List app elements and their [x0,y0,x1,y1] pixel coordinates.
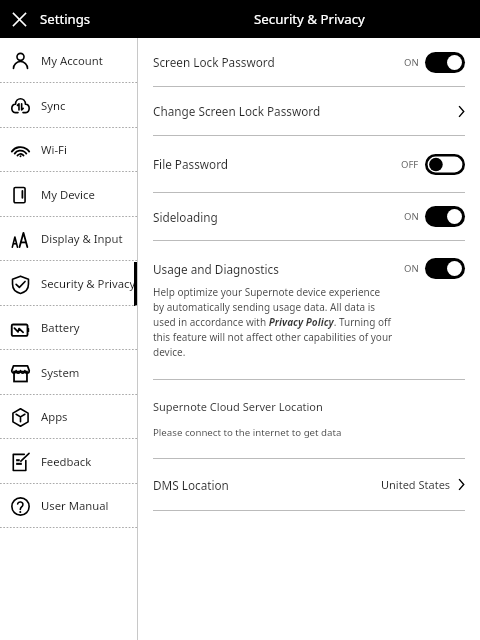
staticText: Usage and Diagnostics [153,261,404,277]
staticText: Feedback [41,454,92,469]
staticText: Sync [41,98,66,113]
staticText: ON [404,56,419,69]
button[interactable]: Screen Lock Password [153,38,465,86]
button[interactable]: Sync [0,84,137,128]
button[interactable]: Close [0,5,103,33]
staticText: Help optimize your Supernote device expe… [153,285,393,359]
staticText: Display & Input [41,231,123,246]
button[interactable]: Change Screen Lock Password [153,87,465,135]
staticText: Supernote Cloud Server Location [153,399,323,414]
staticText: My Device [41,187,95,202]
staticText: DMS Location [153,477,381,493]
staticText: ON [404,262,419,275]
staticText: Security & Privacy [254,10,365,28]
button[interactable]: System [0,351,137,395]
button[interactable]: Feedback [0,440,137,484]
button[interactable]: Sideloading [153,193,465,240]
button[interactable]: DMS Location [153,459,465,510]
staticText: Settings [40,10,91,28]
button[interactable]: Toggle on [425,52,465,73]
button[interactable]: Battery [0,306,137,350]
button[interactable]: Usage and Diagnostics [153,252,465,285]
button[interactable]: Security & Privacy [0,262,137,306]
staticText: Sideloading [153,209,404,225]
staticText: Security & Privacy [41,276,136,291]
staticText: User Manual [41,498,109,513]
button[interactable]: Display & Input [0,217,137,261]
button[interactable]: Apps [0,395,137,439]
staticText: System [41,365,80,380]
button[interactable]: Toggle off [425,154,465,175]
staticText: Battery [41,320,80,335]
other: Close [12,12,27,27]
button[interactable]: My Account [0,39,137,83]
button[interactable]: User Manual [0,484,137,528]
staticText: My Account [41,53,103,68]
staticText: Change Screen Lock Password [153,103,458,119]
button[interactable]: My Device [0,173,137,217]
button[interactable]: Toggle on [425,206,465,227]
staticText: Please connect to the internet to get da… [153,426,342,439]
staticText: Screen Lock Password [153,54,404,70]
staticText: United States [381,477,451,492]
button[interactable]: File Password [153,136,465,192]
staticText: File Password [153,156,401,172]
staticText: Wi-Fi [41,142,67,157]
staticText: ON [404,210,419,223]
button[interactable]: Wi-Fi [0,128,137,172]
staticText: OFF [401,158,419,171]
staticText: Apps [41,409,68,424]
button[interactable]: Toggle on [425,258,465,279]
